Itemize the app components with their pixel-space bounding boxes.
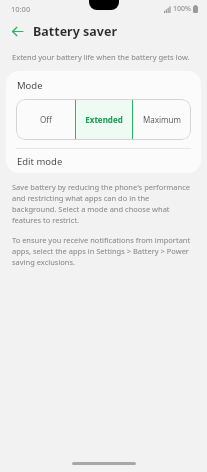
button[interactable]: Back [8,22,26,40]
staticText: 100% [173,4,191,14]
staticText: Edit mode [17,155,63,168]
button[interactable]: Edit mode [6,149,201,173]
staticText: Extended [85,114,123,125]
staticText: Off [40,114,52,125]
button[interactable]: Maximum [133,99,191,140]
staticText: Mode [17,79,43,92]
button[interactable]: Off [16,99,75,140]
staticText: Extend your battery life when the batter… [12,52,190,62]
staticText: Save battery by reducing the phone's per… [12,182,195,225]
button[interactable]: Extended [75,99,133,140]
staticText: Maximum [143,114,181,125]
staticText: 10:00 [11,4,31,14]
staticText: Battery saver [33,23,118,40]
staticText: To ensure you receive notifications from… [12,235,195,267]
